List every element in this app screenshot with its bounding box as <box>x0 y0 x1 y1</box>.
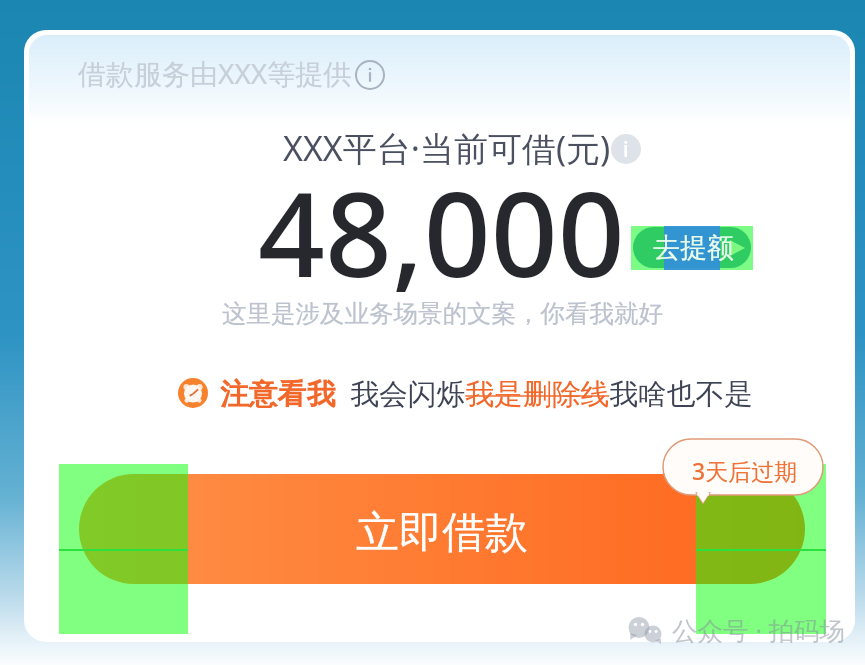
staticText: 去提额 <box>653 231 734 265</box>
other: WeChat <box>628 616 668 646</box>
staticText: XXX平台·当前可借(元) <box>283 125 611 171</box>
button[interactable]: 立即借款 <box>79 474 805 584</box>
staticText: 3天后过期 <box>692 455 798 486</box>
staticText: i <box>623 135 629 164</box>
button[interactable]: Info <box>355 60 385 90</box>
staticText: 立即借款 <box>356 506 528 560</box>
button[interactable]: 借款服务由XXX等提供 <box>78 54 352 92</box>
staticText: 这里是涉及业务场景的文案，你看我就好 <box>222 298 663 329</box>
button[interactable] <box>663 439 825 509</box>
staticText: 公众号 · 拍码场 <box>672 613 846 648</box>
button[interactable] <box>633 227 751 268</box>
button[interactable]: Info <box>611 134 641 164</box>
staticText: 注意看我 我会闪烁我是删除线我啥也不是 <box>220 373 754 412</box>
staticText: 48,000 <box>258 152 625 311</box>
